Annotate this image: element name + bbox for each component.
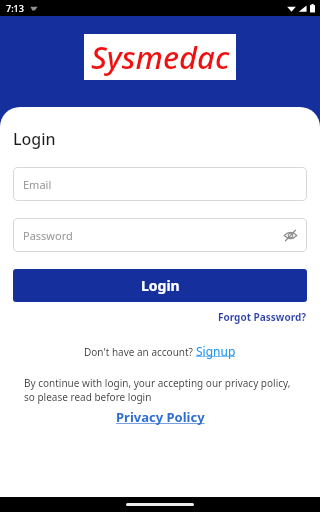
staticText: Signup bbox=[196, 343, 236, 359]
button[interactable]: Password bbox=[13, 218, 307, 252]
button[interactable]: Email bbox=[13, 167, 307, 201]
staticText: Privacy Policy bbox=[116, 408, 205, 426]
staticText: Login bbox=[13, 128, 56, 150]
staticText: 7:13 bbox=[6, 2, 24, 14]
button[interactable]: Login bbox=[13, 269, 307, 302]
staticText: By continue with login, your accepting o… bbox=[24, 376, 296, 404]
staticText: Don't have an account? bbox=[84, 345, 196, 359]
button[interactable]: Signup bbox=[196, 343, 236, 359]
staticText: Password bbox=[23, 228, 73, 243]
staticText: Forgot Password? bbox=[218, 310, 307, 324]
staticText: Login bbox=[141, 276, 180, 295]
button[interactable]: Forgot Password? bbox=[218, 309, 307, 325]
staticText: Email bbox=[23, 177, 52, 192]
button[interactable]: Privacy Policy bbox=[116, 408, 205, 426]
button[interactable]: Show password bbox=[281, 226, 299, 244]
staticText: Sysmedac bbox=[91, 36, 230, 78]
